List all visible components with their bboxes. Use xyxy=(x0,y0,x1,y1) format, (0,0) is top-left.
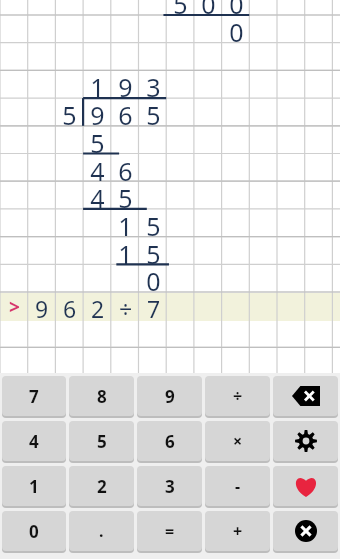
button[interactable]: = xyxy=(137,511,202,551)
staticText: 4 xyxy=(90,154,105,182)
button[interactable]: Backspace xyxy=(273,376,338,416)
staticText: 3 xyxy=(165,475,175,498)
staticText: 6 xyxy=(118,98,133,126)
button[interactable]: 3 xyxy=(137,466,202,506)
button[interactable]: 4 xyxy=(2,421,66,461)
button[interactable]: 6 xyxy=(137,421,202,461)
button[interactable]: 1 xyxy=(2,466,66,506)
staticText: × xyxy=(233,430,243,452)
staticText: . xyxy=(99,520,104,542)
staticText: + xyxy=(233,520,243,542)
staticText: 4 xyxy=(29,430,39,453)
staticText: 8 xyxy=(97,385,107,408)
button[interactable]: ÷ xyxy=(205,376,270,416)
staticText: 9 xyxy=(118,70,133,98)
staticText: 5 xyxy=(146,209,161,237)
button[interactable]: 8 xyxy=(69,376,134,416)
staticText: 7 xyxy=(147,293,161,321)
staticText: 0 xyxy=(229,15,244,43)
staticText: ÷ xyxy=(119,293,133,321)
staticText: ÷ xyxy=(233,385,243,407)
button[interactable]: 2 xyxy=(69,466,134,506)
staticText: 1 xyxy=(118,209,133,237)
staticText: 5 xyxy=(173,0,188,15)
button[interactable]: 0 xyxy=(2,511,66,551)
staticText: 0 xyxy=(29,520,39,543)
staticText: 1 xyxy=(90,70,105,98)
staticText: 6 xyxy=(63,293,77,321)
staticText: 9 xyxy=(90,98,105,126)
staticText: 2 xyxy=(91,293,105,321)
staticText: 2 xyxy=(97,475,107,498)
staticText: 0 xyxy=(201,0,216,15)
staticText: 4 xyxy=(90,181,105,209)
staticText: > xyxy=(9,294,20,320)
staticText: 6 xyxy=(165,430,175,453)
staticText: 5 xyxy=(97,430,107,453)
button[interactable]: Favorite xyxy=(273,466,338,506)
button[interactable]: 7 xyxy=(2,376,66,416)
staticText: 1 xyxy=(29,475,39,498)
staticText: 3 xyxy=(146,70,161,98)
staticText: 5 xyxy=(62,98,77,126)
staticText: 5 xyxy=(90,126,105,154)
button[interactable]: - xyxy=(205,466,270,506)
staticText: 5 xyxy=(146,98,161,126)
button[interactable]: > xyxy=(0,293,340,321)
button[interactable]: × xyxy=(205,421,270,461)
button[interactable]: Settings xyxy=(273,421,338,461)
staticText: 0 xyxy=(229,0,244,15)
staticText: 1 xyxy=(118,237,133,265)
button[interactable]: . xyxy=(69,511,134,551)
button[interactable]: 9 xyxy=(137,376,202,416)
staticText: - xyxy=(235,475,241,497)
staticText: 9 xyxy=(35,293,49,321)
button[interactable]: + xyxy=(205,511,270,551)
staticText: 6 xyxy=(118,154,133,182)
button[interactable]: Clear xyxy=(273,511,338,551)
staticText: = xyxy=(165,520,175,542)
staticText: 7 xyxy=(29,385,39,408)
staticText: 0 xyxy=(146,264,161,292)
staticText: 5 xyxy=(146,237,161,265)
staticText: 5 xyxy=(118,181,133,209)
button[interactable]: 5 xyxy=(69,421,134,461)
staticText: 9 xyxy=(165,385,175,408)
